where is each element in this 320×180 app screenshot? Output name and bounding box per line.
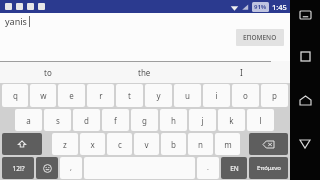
staticText: e xyxy=(69,90,74,101)
button[interactable]: l xyxy=(247,109,274,131)
staticText: b xyxy=(171,139,176,150)
button[interactable]: to xyxy=(0,62,96,83)
button[interactable]: r xyxy=(87,84,114,107)
button[interactable]: t xyxy=(116,84,143,107)
button[interactable]: n xyxy=(188,133,213,155)
staticText: h xyxy=(171,115,176,126)
button[interactable]: Back xyxy=(295,134,315,154)
staticText: p xyxy=(272,90,277,101)
staticText: r xyxy=(99,90,103,101)
button[interactable]: Recents xyxy=(295,46,315,66)
staticText: yanis xyxy=(5,15,27,27)
button[interactable]: Shift xyxy=(2,133,42,155)
staticText: d xyxy=(84,115,89,126)
button[interactable]: Emoji xyxy=(36,157,58,179)
button[interactable]: EN xyxy=(221,157,247,179)
button[interactable]: q xyxy=(2,84,28,107)
button[interactable]: the xyxy=(96,62,193,83)
button[interactable]: v xyxy=(134,133,159,155)
staticText: l xyxy=(259,115,262,126)
button[interactable]: y xyxy=(145,84,172,107)
staticText: g xyxy=(142,115,147,126)
button[interactable]: e xyxy=(58,84,85,107)
button[interactable]: . xyxy=(197,157,219,179)
staticText: Επόμενο xyxy=(257,164,281,172)
button[interactable]: ΕΠΟΜΕΝΟ xyxy=(236,29,284,46)
button[interactable]: Backspace xyxy=(249,133,288,155)
staticText: EN xyxy=(230,164,239,173)
button[interactable]: b xyxy=(161,133,186,155)
button[interactable]: x xyxy=(80,133,105,155)
staticText: o xyxy=(243,90,248,101)
staticText: j xyxy=(201,115,204,126)
staticText: ΕΠΟΜΕΝΟ xyxy=(243,33,277,42)
staticText: s xyxy=(56,115,60,126)
staticText: i xyxy=(215,90,218,101)
button[interactable]: h xyxy=(160,109,187,131)
staticText: I xyxy=(240,67,243,78)
staticText: x xyxy=(90,139,95,150)
staticText: n xyxy=(198,139,203,150)
button[interactable]: m xyxy=(215,133,240,155)
staticText: k xyxy=(229,115,234,126)
staticText: , xyxy=(70,163,72,173)
staticText: 91% xyxy=(254,3,267,11)
staticText: m xyxy=(224,139,232,150)
staticText: t xyxy=(128,90,131,101)
staticText: 1:45 xyxy=(272,2,287,12)
button[interactable]: I xyxy=(193,62,290,83)
button[interactable]: f xyxy=(102,109,129,131)
button[interactable]: w xyxy=(30,84,56,107)
button[interactable]: c xyxy=(107,133,132,155)
staticText: w xyxy=(40,90,47,101)
button[interactable]: s xyxy=(44,109,71,131)
button[interactable]: i xyxy=(203,84,230,107)
staticText: q xyxy=(13,90,18,101)
staticText: v xyxy=(144,139,149,150)
button[interactable]: a xyxy=(15,109,42,131)
staticText: z xyxy=(63,139,67,150)
button[interactable]: p xyxy=(261,84,288,107)
button[interactable]: u xyxy=(174,84,201,107)
staticText: a xyxy=(26,115,31,126)
button[interactable]: j xyxy=(189,109,216,131)
button[interactable]: k xyxy=(218,109,245,131)
staticText: . xyxy=(207,163,209,173)
staticText: 12!? xyxy=(12,164,25,173)
staticText: to xyxy=(44,67,52,78)
staticText: y xyxy=(156,90,161,101)
button[interactable]: Home xyxy=(295,90,315,110)
button[interactable]: Hide keyboard xyxy=(296,6,314,24)
staticText: f xyxy=(114,115,117,126)
button[interactable]: z xyxy=(52,133,78,155)
button[interactable]: d xyxy=(73,109,100,131)
staticText: u xyxy=(185,90,190,101)
button[interactable]: Επόμενο xyxy=(249,157,288,179)
button[interactable]: g xyxy=(131,109,158,131)
button[interactable]: 12!? xyxy=(2,157,34,179)
button[interactable]: , xyxy=(60,157,82,179)
button[interactable]: o xyxy=(232,84,259,107)
staticText: c xyxy=(118,139,122,150)
staticText: the xyxy=(138,67,151,78)
